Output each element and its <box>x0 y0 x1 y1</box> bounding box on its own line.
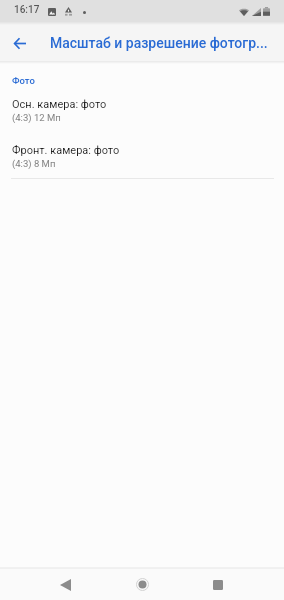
staticText: Фото <box>12 75 35 86</box>
button[interactable]: Главный экран <box>120 569 164 600</box>
button[interactable]: Обзор <box>196 569 240 600</box>
button[interactable]: Осн. камера: фото <box>0 94 284 127</box>
button[interactable]: Назад <box>0 23 40 64</box>
staticText: Масштаб и разрешение фотогр... <box>50 35 268 51</box>
staticText: Фронт. камера: фото <box>12 144 120 157</box>
button[interactable]: Фронт. камера: фото <box>0 140 284 173</box>
button[interactable]: Назад <box>43 569 87 600</box>
staticText: (4:3) 12 Мп <box>12 112 61 123</box>
staticText: (4:3) 8 Мп <box>12 158 56 169</box>
staticText: Осн. камера: фото <box>12 98 107 111</box>
staticText: 16:17 <box>14 4 40 16</box>
